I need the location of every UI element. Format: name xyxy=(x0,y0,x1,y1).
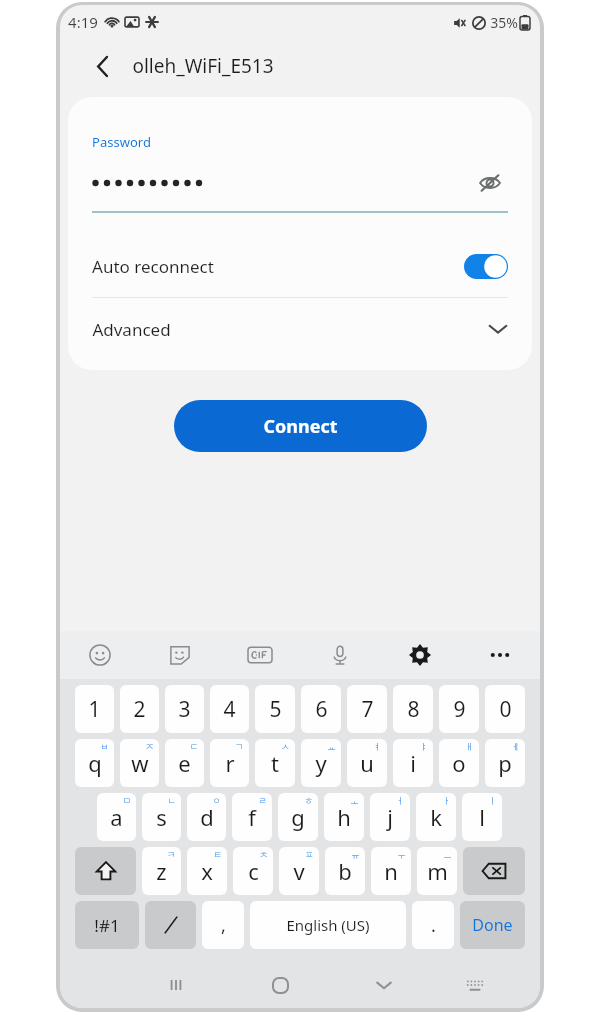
button[interactable]: Switch keyboard xyxy=(436,962,514,1008)
button[interactable]: d xyxy=(187,793,226,841)
button[interactable]: e xyxy=(165,739,204,787)
staticText: d xyxy=(200,802,214,832)
staticText: ㅕ xyxy=(373,741,382,752)
staticText: 0 xyxy=(499,695,512,724)
staticText: f xyxy=(248,802,256,832)
button[interactable]: i xyxy=(393,739,433,787)
button[interactable]: Show password xyxy=(472,165,508,201)
button[interactable]: Keyboard settings xyxy=(380,631,460,679)
staticText: q xyxy=(88,748,102,778)
staticText: 35% xyxy=(490,13,518,32)
button[interactable]: !#1 xyxy=(75,901,139,949)
staticText: ㄴ xyxy=(167,795,176,806)
button[interactable]: s xyxy=(142,793,181,841)
button[interactable]: 1 xyxy=(75,685,114,733)
button[interactable]: 0 xyxy=(485,685,525,733)
button[interactable]: m xyxy=(417,847,457,895)
staticText: y xyxy=(315,748,327,778)
button[interactable]: b xyxy=(325,847,365,895)
button[interactable]: Back xyxy=(86,49,120,83)
staticText: k xyxy=(430,802,442,832)
staticText: c xyxy=(248,856,259,886)
button[interactable]: Home xyxy=(228,962,332,1008)
button[interactable]: z xyxy=(142,847,181,895)
staticText: ㅣ xyxy=(488,795,497,806)
staticText: ㅡ xyxy=(443,849,452,860)
staticText: ㅓ xyxy=(396,795,405,806)
staticText: v xyxy=(293,856,305,886)
staticText: English (US) xyxy=(286,915,370,935)
staticText: ㅔ xyxy=(511,741,520,752)
button[interactable]: u xyxy=(347,739,387,787)
staticText: b xyxy=(338,856,352,886)
button[interactable]: o xyxy=(439,739,479,787)
button[interactable]: f xyxy=(232,793,272,841)
button[interactable]: 7 xyxy=(347,685,387,733)
staticText: 5 xyxy=(269,695,282,724)
staticText: a xyxy=(110,802,123,832)
staticText: r xyxy=(225,748,235,778)
button[interactable]: 3 xyxy=(165,685,204,733)
button[interactable]: k xyxy=(416,793,456,841)
staticText: ㄱ xyxy=(235,741,244,752)
staticText: olleh_WiFi_E513 xyxy=(132,53,274,79)
button[interactable]: , xyxy=(202,901,244,949)
button[interactable]: Recents xyxy=(124,962,228,1008)
button[interactable]: n xyxy=(371,847,411,895)
button[interactable]: Change language xyxy=(145,901,196,949)
button[interactable]: c xyxy=(233,847,273,895)
staticText: Connect xyxy=(263,414,338,439)
button[interactable]: Connect xyxy=(174,400,427,452)
button[interactable]: Done xyxy=(460,901,525,949)
button[interactable]: a xyxy=(97,793,136,841)
staticText: 3 xyxy=(178,695,191,724)
button[interactable]: Auto reconnect xyxy=(92,239,508,293)
staticText: ㅛ xyxy=(327,741,336,752)
staticText: Advanced xyxy=(92,318,171,341)
button[interactable]: English (US) xyxy=(250,901,406,949)
button[interactable]: GIF xyxy=(220,631,300,679)
button[interactable]: Emoji xyxy=(60,631,140,679)
staticText: ㅏ xyxy=(442,795,451,806)
button[interactable]: Shift xyxy=(75,847,136,895)
button[interactable]: q xyxy=(75,739,114,787)
button[interactable]: 9 xyxy=(439,685,479,733)
button[interactable]: Advanced xyxy=(92,298,508,360)
staticText: 9 xyxy=(453,695,466,724)
button[interactable]: g xyxy=(278,793,318,841)
button[interactable]: j xyxy=(370,793,410,841)
button[interactable]: Show password xyxy=(92,165,508,201)
staticText: ㅑ xyxy=(419,741,428,752)
button[interactable]: l xyxy=(462,793,502,841)
button[interactable]: y xyxy=(301,739,341,787)
button[interactable]: Voice input xyxy=(300,631,380,679)
button[interactable]: h xyxy=(324,793,364,841)
staticText: ㅌ xyxy=(213,849,222,860)
button[interactable]: 2 xyxy=(120,685,159,733)
staticText: ㄷ xyxy=(190,741,199,752)
staticText: i xyxy=(410,748,416,778)
staticText: 1 xyxy=(88,695,101,724)
staticText: g xyxy=(291,802,305,832)
staticText: t xyxy=(271,748,279,778)
button[interactable]: . xyxy=(412,901,454,949)
button[interactable]: x xyxy=(187,847,227,895)
button[interactable]: r xyxy=(210,739,249,787)
button[interactable]: 4 xyxy=(210,685,249,733)
button[interactable]: t xyxy=(255,739,295,787)
button[interactable]: 5 xyxy=(255,685,295,733)
button[interactable]: Backspace xyxy=(463,847,525,895)
staticText: Password xyxy=(92,133,151,151)
button[interactable]: 8 xyxy=(393,685,433,733)
staticText: ㄹ xyxy=(258,795,267,806)
button[interactable]: v xyxy=(279,847,319,895)
staticText: j xyxy=(387,802,393,832)
button[interactable]: Hide keyboard xyxy=(332,962,436,1008)
button[interactable]: 6 xyxy=(301,685,341,733)
staticText: ㅜ xyxy=(397,849,406,860)
button[interactable]: p xyxy=(485,739,525,787)
staticText: 6 xyxy=(315,695,328,724)
button[interactable]: w xyxy=(120,739,159,787)
button[interactable]: Sticker xyxy=(140,631,220,679)
button[interactable]: More xyxy=(460,631,540,679)
